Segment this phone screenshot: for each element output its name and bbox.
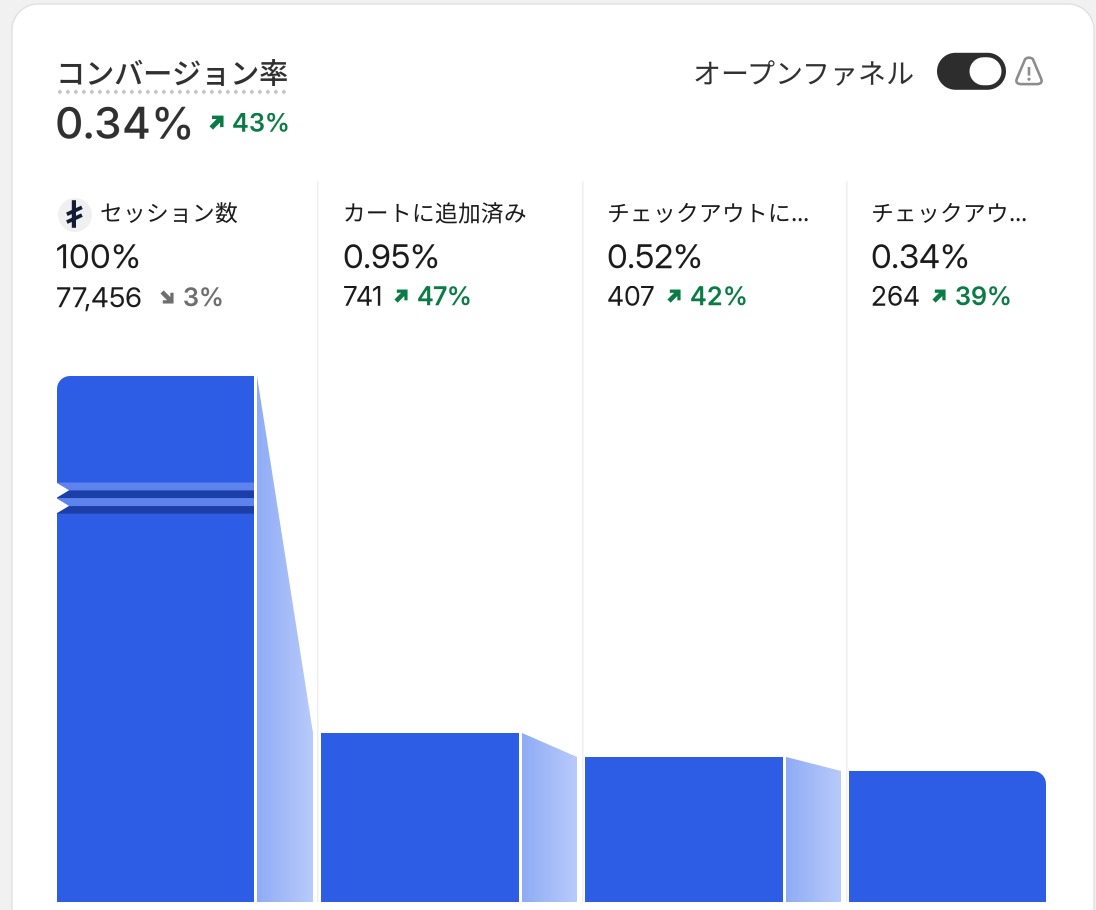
staticText: 47% xyxy=(417,281,472,311)
staticText: 77,456 xyxy=(56,280,142,314)
staticText: 264 xyxy=(871,280,920,312)
staticText: 741 xyxy=(343,280,382,312)
staticText: カートに追加済み xyxy=(343,195,527,228)
staticText: 0.34% xyxy=(55,96,195,149)
button[interactable]: Warning xyxy=(1014,56,1044,87)
staticText: 42% xyxy=(690,281,748,311)
staticText: 0.52% xyxy=(607,236,703,276)
staticText: セッション数 xyxy=(100,195,238,228)
staticText: 43% xyxy=(232,107,290,138)
staticText: 407 xyxy=(607,280,655,312)
staticText: 0.34% xyxy=(871,236,970,276)
staticText: コンバージョン率 xyxy=(56,50,288,92)
staticText: チェックアウトに... xyxy=(607,195,809,228)
staticText: 3% xyxy=(183,282,224,312)
button[interactable]: オープンファネル xyxy=(693,51,1006,91)
staticText: 0.95% xyxy=(343,236,440,276)
staticText: チェックアウ... xyxy=(871,195,1027,228)
staticText: 100% xyxy=(56,236,141,276)
staticText: 39% xyxy=(955,281,1012,311)
staticText: オープンファネル xyxy=(693,51,914,91)
